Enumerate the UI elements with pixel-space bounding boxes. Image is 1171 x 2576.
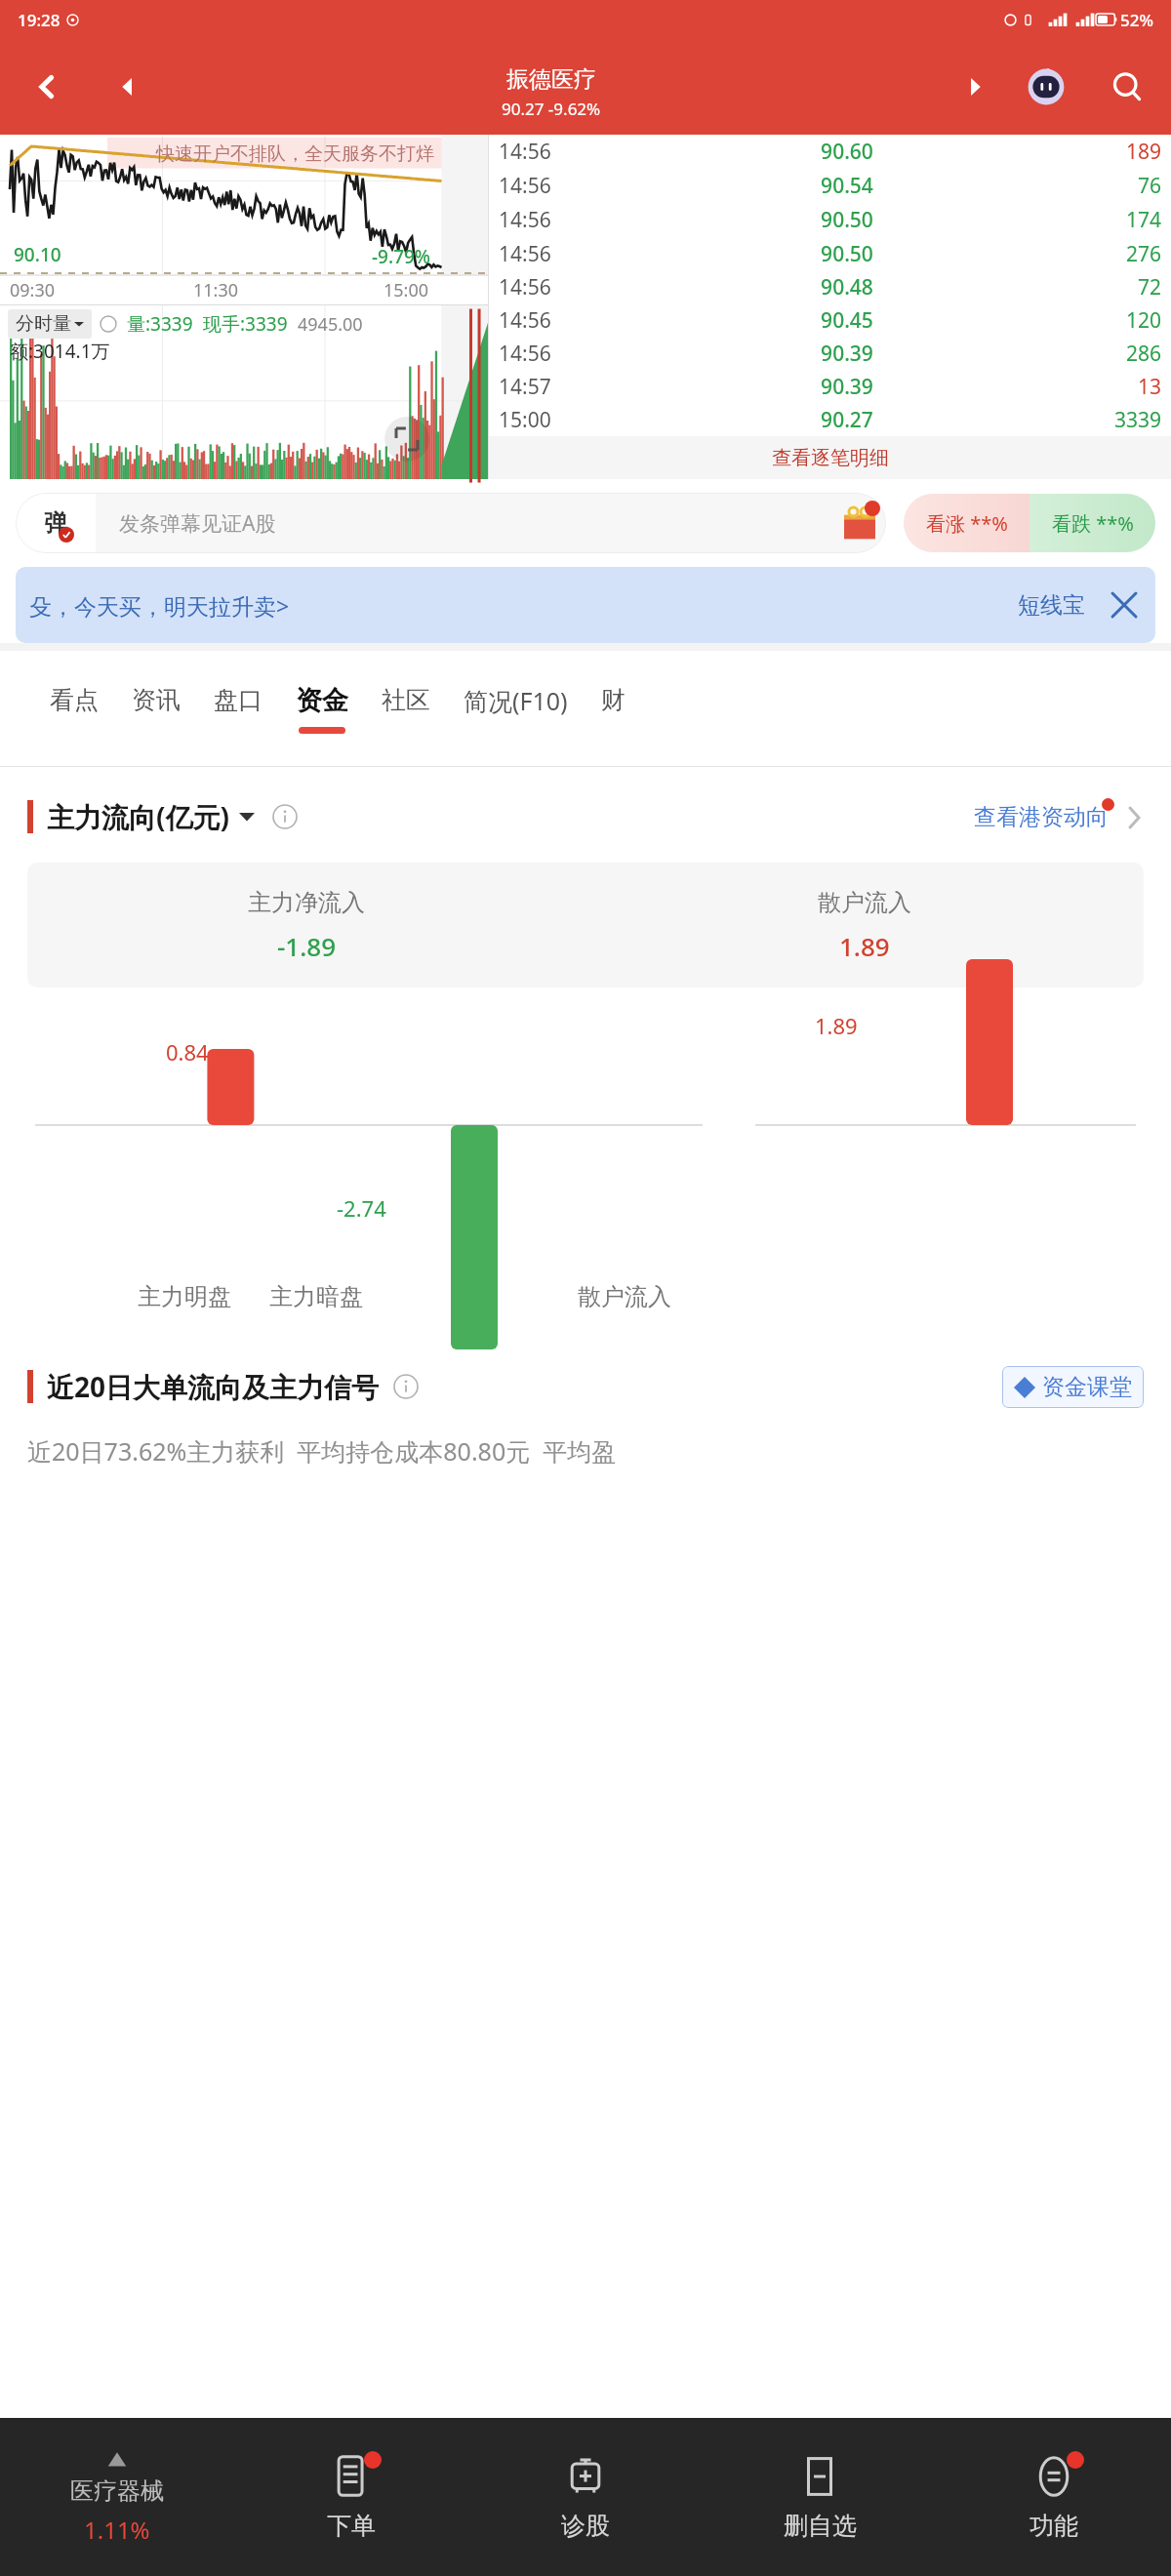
staticText: 120: [963, 306, 1161, 335]
staticText: 90.50: [731, 206, 963, 234]
staticText: 量:3339: [127, 311, 193, 337]
staticText: 现手:3339: [203, 311, 288, 337]
staticText: 1.89: [815, 1011, 858, 1040]
button[interactable]: 简况(F10): [447, 651, 585, 766]
staticText: 90.60: [731, 138, 963, 166]
button[interactable]: 医疗器械: [0, 2418, 234, 2576]
button[interactable]: Info: [393, 1374, 419, 1399]
button[interactable]: AI assistant: [1009, 39, 1083, 135]
button[interactable]: 主力净流入: [27, 863, 1144, 987]
button[interactable]: 资讯: [115, 651, 197, 766]
staticText: 174: [963, 206, 1161, 234]
staticText: 弹: [44, 508, 67, 538]
button[interactable]: 14:57: [489, 370, 1171, 403]
button[interactable]: 14:56: [489, 135, 1171, 169]
button[interactable]: 下单: [234, 2418, 468, 2576]
button[interactable]: 社区: [365, 651, 447, 766]
button[interactable]: Back: [0, 39, 94, 135]
staticText: -1.89: [277, 929, 337, 963]
staticText: 276: [963, 240, 1161, 268]
staticText: 90.50: [731, 240, 963, 268]
button[interactable]: Search: [1083, 39, 1171, 135]
staticText: 90.48: [731, 273, 963, 302]
button[interactable]: 资金: [279, 651, 365, 766]
staticText: 快速开户不排队，全天服务不打烊: [156, 142, 434, 166]
button[interactable]: 14:56: [489, 203, 1171, 237]
button[interactable]: 查看港资动向: [974, 803, 1144, 831]
staticText: 主力明盘: [138, 1282, 231, 1311]
staticText: 189: [963, 138, 1161, 166]
staticText: 殳，今天买，明天拉升卖>: [29, 590, 290, 621]
button[interactable]: 看跌 **%: [1030, 494, 1155, 552]
staticText: 15:00: [499, 406, 731, 434]
staticText: -9.79%: [372, 244, 431, 269]
staticText: 13: [963, 373, 1161, 401]
button[interactable]: 查看逐笔明细: [489, 436, 1171, 479]
staticText: -2.74: [337, 1193, 386, 1223]
staticText: 下单: [327, 2511, 376, 2541]
staticText: 短线宝: [1018, 591, 1085, 620]
staticText: 分时量: [16, 312, 71, 336]
staticText: 14:56: [499, 172, 731, 200]
staticText: 医疗器械: [70, 2476, 164, 2506]
staticText: 09:30: [10, 278, 56, 302]
staticText: 近20日73.62%主力获利 平均持仓成本80.80元 平均盈: [27, 1434, 617, 1468]
staticText: 15:00: [384, 278, 429, 302]
button[interactable]: 殳，今天买，明天拉升卖>: [16, 567, 1155, 643]
staticText: 财: [601, 685, 626, 715]
staticText: 看涨 **%: [926, 510, 1008, 537]
staticText: 额:3014.1万: [10, 339, 110, 364]
button[interactable]: Next stock: [941, 39, 1009, 135]
button[interactable]: 弹: [16, 493, 886, 553]
staticText: 3339: [963, 406, 1161, 434]
staticText: 1.11%: [84, 2514, 150, 2546]
staticText: 社区: [382, 685, 430, 715]
staticText: 90.45: [731, 306, 963, 335]
button[interactable]: 分时量: [16, 312, 84, 336]
button[interactable]: 看点: [33, 651, 115, 766]
staticText: 14:56: [499, 273, 731, 302]
staticText: 14:56: [499, 306, 731, 335]
staticText: 1.89: [839, 929, 890, 963]
button[interactable]: Previous stock: [94, 39, 162, 135]
staticText: 11:30: [193, 278, 239, 302]
button[interactable]: 删自选: [703, 2418, 937, 2576]
staticText: 主力流向(亿元): [47, 798, 229, 835]
staticText: 14:56: [499, 138, 731, 166]
staticText: 诊股: [561, 2511, 610, 2541]
staticText: 90.39: [731, 340, 963, 368]
staticText: 14:56: [499, 206, 731, 234]
other: Help: [100, 315, 117, 333]
button[interactable]: 振德医疗: [162, 54, 941, 120]
button[interactable]: 主力流向(亿元): [47, 798, 255, 835]
staticText: 0.84: [166, 1037, 209, 1067]
button[interactable]: 14:56: [489, 237, 1171, 270]
button[interactable]: 14:56: [489, 337, 1171, 370]
staticText: 简况(F10): [464, 684, 568, 717]
staticText: 发条弹幕见证A股: [119, 509, 276, 538]
button[interactable]: 盘口: [197, 651, 279, 766]
button[interactable]: 资金课堂: [1002, 1366, 1144, 1408]
staticText: 主力净流入: [248, 888, 365, 917]
staticText: 14:57: [499, 373, 731, 401]
staticText: 功能: [1030, 2511, 1078, 2541]
staticText: 删自选: [784, 2511, 857, 2541]
staticText: 72: [963, 273, 1161, 302]
button[interactable]: 14:56: [489, 270, 1171, 303]
button[interactable]: 15:00: [489, 403, 1171, 436]
button[interactable]: 看涨 **%: [904, 494, 1030, 552]
button[interactable]: Fullscreen: [384, 417, 429, 462]
staticText: 90.54: [731, 172, 963, 200]
staticText: 76: [963, 172, 1161, 200]
button[interactable]: 财: [585, 651, 642, 766]
button[interactable]: 诊股: [468, 2418, 703, 2576]
button[interactable]: 14:56: [489, 303, 1171, 337]
staticText: 90.39: [731, 373, 963, 401]
staticText: 主力暗盘: [269, 1282, 363, 1311]
staticText: 看点: [50, 685, 99, 715]
button[interactable]: 14:56: [489, 169, 1171, 203]
button[interactable]: Close: [1109, 589, 1140, 621]
button[interactable]: Info: [272, 804, 298, 829]
staticText: 散户流入: [578, 1282, 671, 1311]
button[interactable]: 功能: [937, 2418, 1171, 2576]
